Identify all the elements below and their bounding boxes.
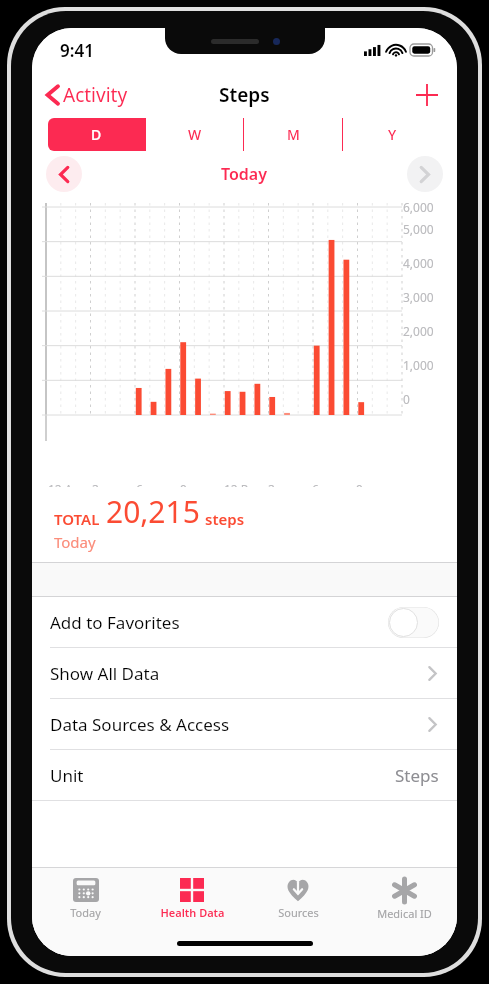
staticText: 5,000: [403, 221, 434, 237]
button[interactable]: Previous day: [46, 156, 82, 192]
button[interactable]: Medical ID: [351, 868, 457, 930]
button[interactable]: Data Sources & Access: [32, 699, 457, 749]
button[interactable]: Health Data: [139, 868, 245, 930]
staticText: 3: [268, 481, 275, 487]
button[interactable]: M: [244, 118, 342, 151]
staticText: Today: [70, 905, 101, 920]
staticText: W: [188, 125, 202, 144]
button[interactable]: W: [146, 118, 243, 151]
button[interactable]: Activity: [42, 76, 132, 114]
button[interactable]: Y: [343, 118, 441, 151]
staticText: 2,000: [403, 323, 434, 339]
staticText: M: [287, 125, 300, 144]
staticText: Steps: [395, 764, 439, 787]
staticText: 1,000: [403, 357, 434, 373]
staticText: 3: [92, 481, 99, 487]
button[interactable]: Today: [32, 868, 139, 930]
staticText: 12 P: [224, 481, 249, 487]
button[interactable]: D: [48, 118, 145, 151]
staticText: 3,000: [403, 289, 434, 305]
staticText: Sources: [278, 905, 319, 920]
staticText: Activity: [63, 82, 128, 108]
staticText: Show All Data: [50, 662, 160, 685]
button[interactable]: Unit: [32, 750, 457, 800]
staticText: 6: [136, 481, 143, 487]
staticText: 4,000: [403, 255, 434, 271]
staticText: Data Sources & Access: [50, 713, 230, 736]
staticText: Steps: [219, 82, 270, 108]
staticText: 20,215: [106, 491, 200, 532]
button[interactable]: Show All Data: [32, 648, 457, 698]
staticText: 9: [180, 481, 187, 487]
staticText: 0: [403, 391, 410, 407]
button[interactable]: Add: [411, 79, 443, 111]
button[interactable]: Sources: [245, 868, 351, 930]
staticText: Health Data: [160, 905, 225, 920]
staticText: TOTAL: [54, 509, 100, 529]
staticText: Unit: [50, 764, 84, 787]
staticText: D: [91, 125, 102, 144]
staticText: Medical ID: [377, 906, 432, 921]
button[interactable]: Next day: [407, 156, 443, 192]
staticText: Y: [388, 125, 397, 144]
staticText: 6: [312, 481, 319, 487]
staticText: Add to Favorites: [50, 611, 180, 634]
staticText: 9:41: [60, 39, 94, 62]
staticText: 9: [356, 481, 363, 487]
staticText: Today: [54, 532, 96, 552]
staticText: steps: [205, 509, 245, 529]
staticText: 12 A: [48, 481, 73, 487]
staticText: 6,000: [403, 199, 434, 215]
button[interactable]: Today: [221, 163, 268, 185]
button[interactable]: Add to Favorites: [32, 597, 457, 647]
